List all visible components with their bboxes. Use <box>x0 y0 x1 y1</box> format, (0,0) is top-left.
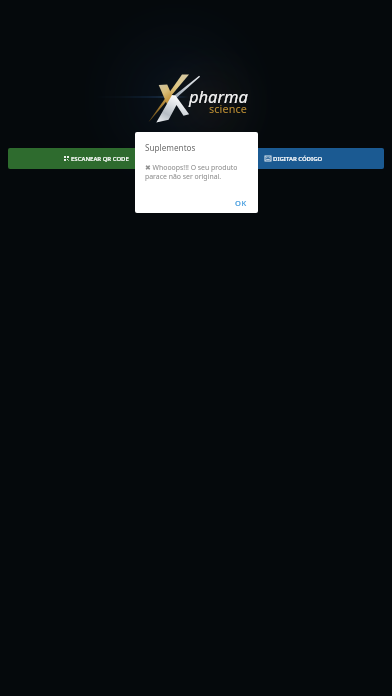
staticText: OK <box>235 198 247 208</box>
staticText: pharma <box>189 85 248 107</box>
other: QR code <box>64 156 69 161</box>
other: Keyboard <box>265 156 271 161</box>
button[interactable]: QR code <box>8 148 192 169</box>
staticText: ESCANEAR QR CODE <box>71 155 129 163</box>
staticText: science <box>209 101 247 116</box>
button[interactable]: Keyboard <box>200 148 384 169</box>
staticText: ✖ Whooops!!! O seu produto parace não se… <box>145 163 245 181</box>
button[interactable]: OK <box>224 193 258 213</box>
staticText: Suplementos <box>145 142 196 153</box>
staticText: DIGITAR CÓDIGO <box>273 155 323 163</box>
